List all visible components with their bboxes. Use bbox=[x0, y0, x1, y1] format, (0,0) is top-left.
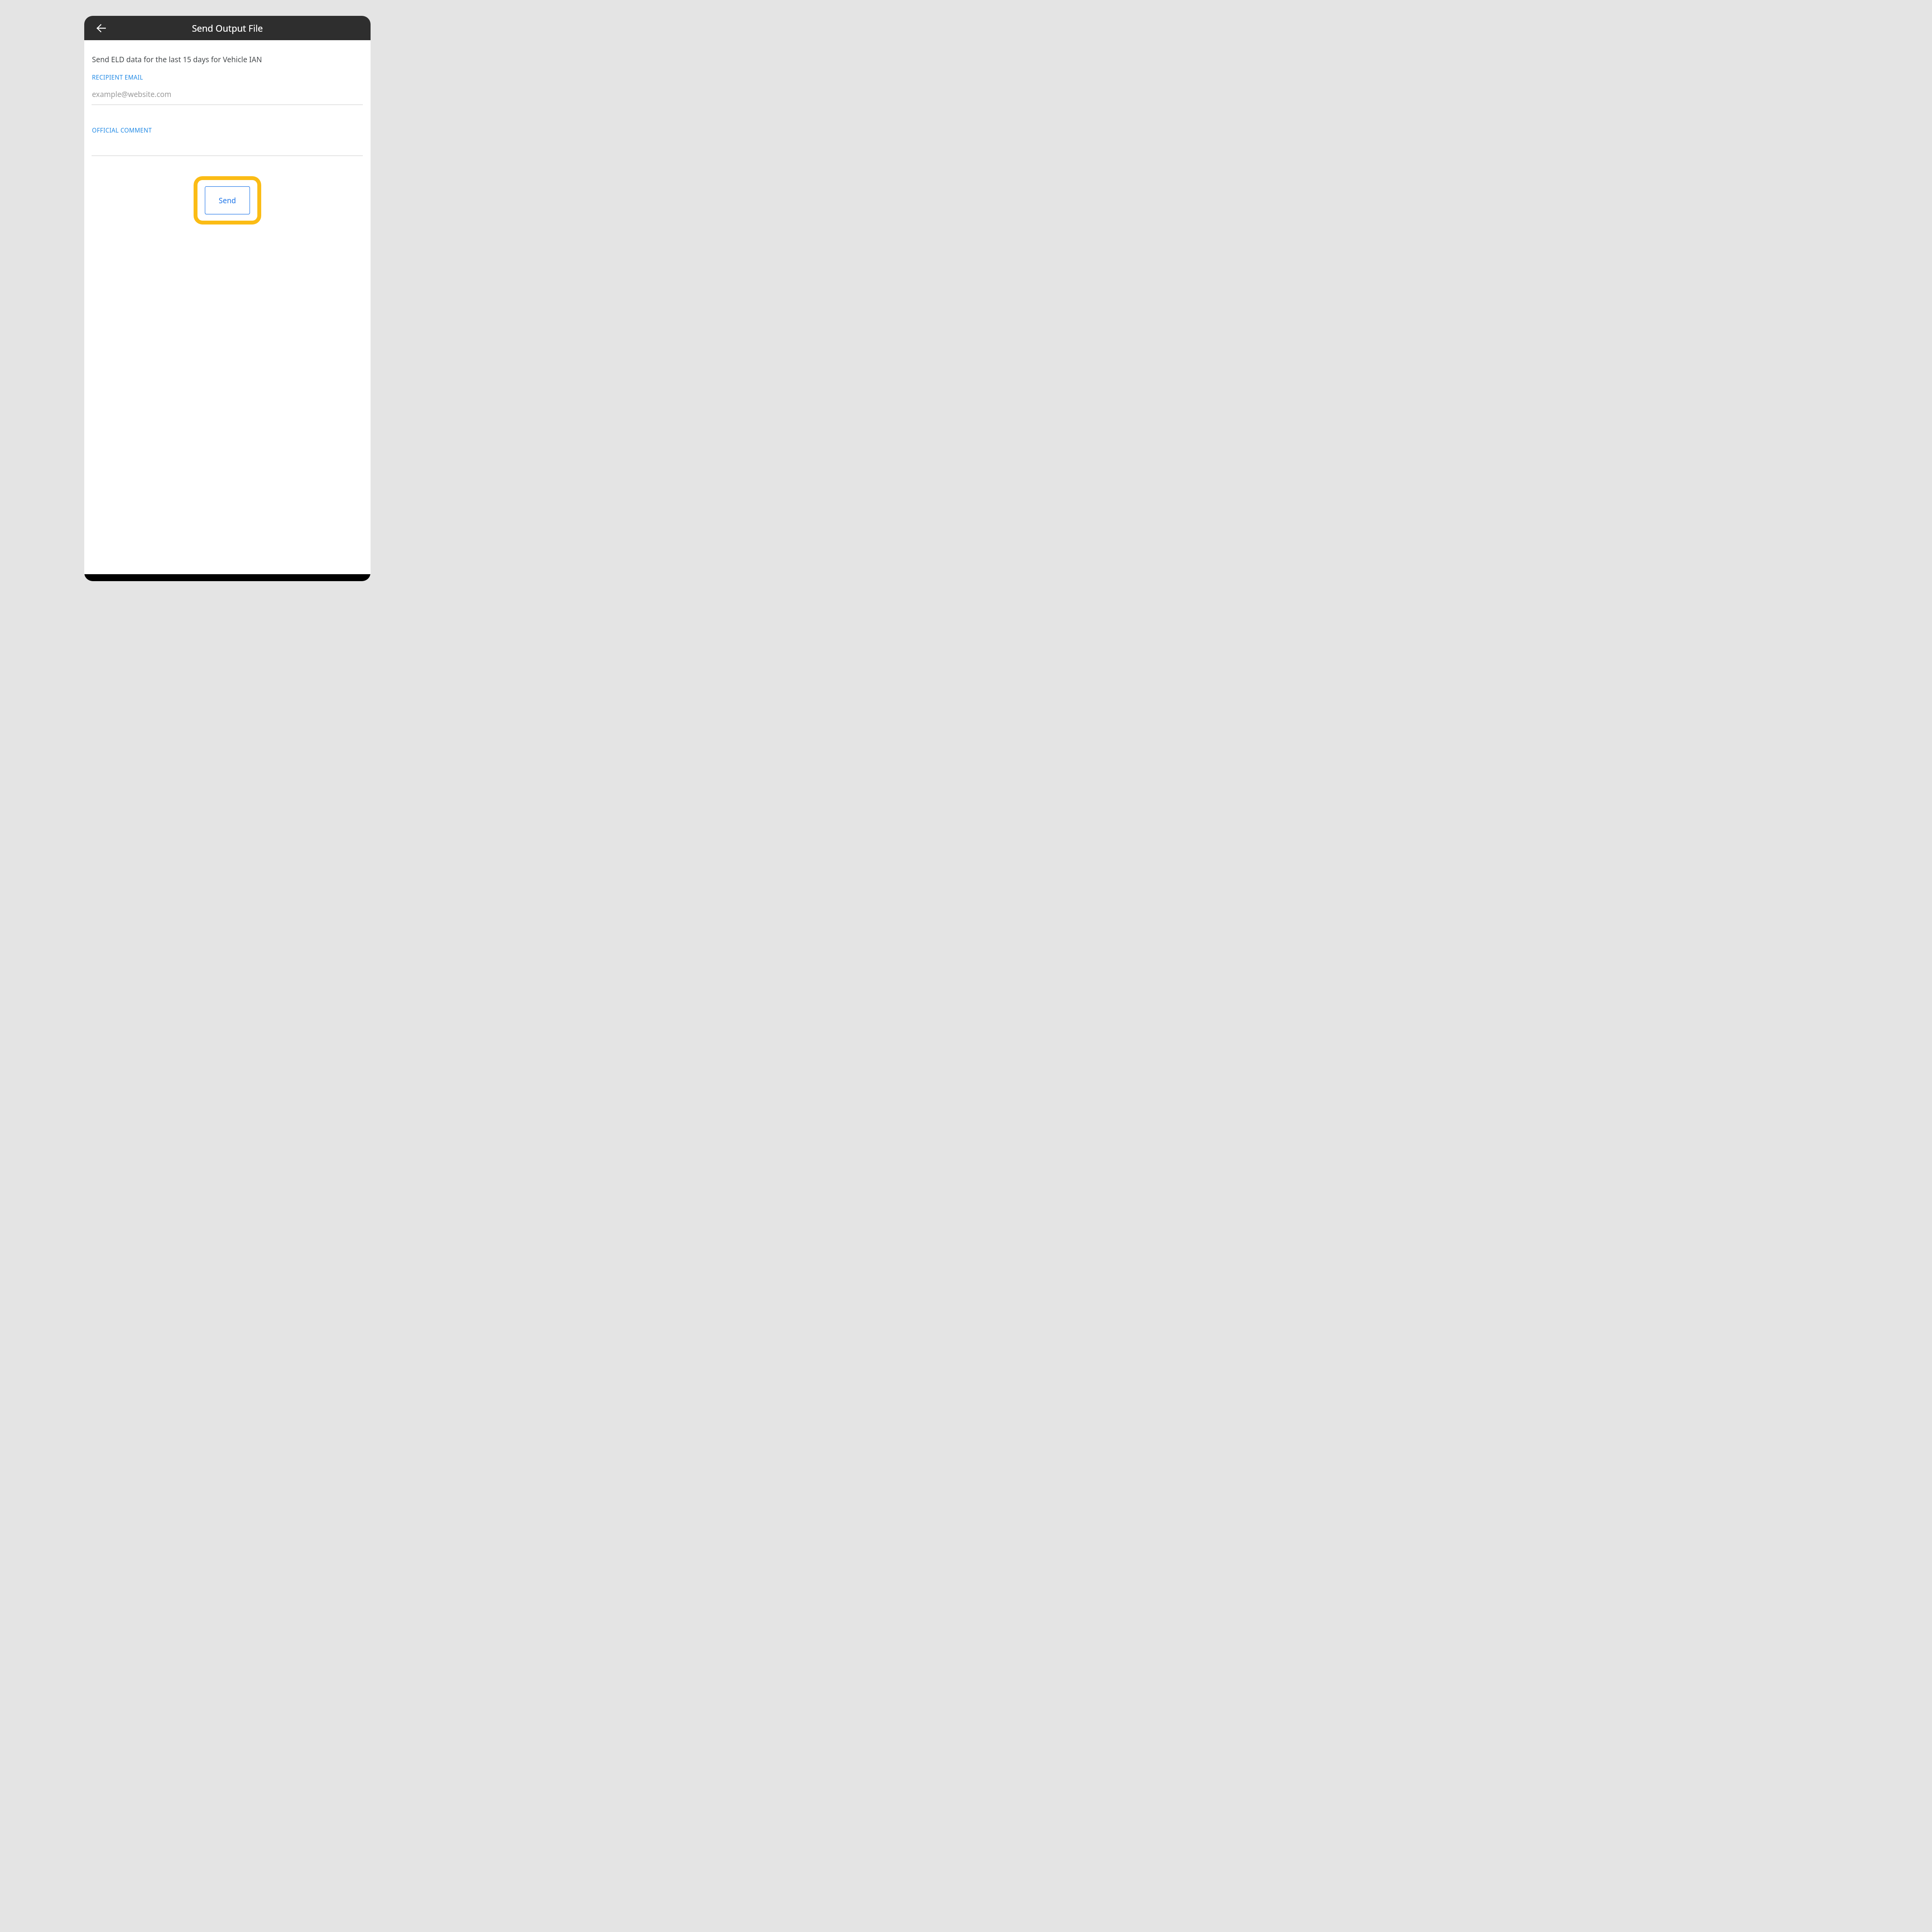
button[interactable]: Back bbox=[92, 19, 111, 37]
button[interactable]: Send bbox=[194, 176, 261, 224]
staticText: Send bbox=[219, 196, 236, 206]
staticText: RECIPIENT EMAIL bbox=[92, 73, 143, 81]
staticText: OFFICIAL COMMENT bbox=[92, 126, 152, 134]
staticText: Send ELD data for the last 15 days for V… bbox=[92, 54, 262, 65]
staticText: Send Output File bbox=[84, 22, 371, 34]
button[interactable]: example@website.com bbox=[92, 89, 172, 99]
